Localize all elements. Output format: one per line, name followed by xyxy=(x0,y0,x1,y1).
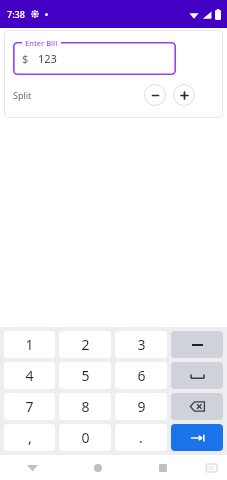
button[interactable]: Space xyxy=(171,362,223,389)
button[interactable]: 7 xyxy=(4,393,55,420)
staticText: Enter Bill xyxy=(25,38,58,48)
button[interactable]: Enter xyxy=(171,424,223,451)
button[interactable]: Back xyxy=(0,455,65,480)
staticText: 7:38 xyxy=(7,8,25,20)
staticText: Split xyxy=(13,89,32,101)
staticText: , xyxy=(28,428,32,447)
staticText: 0 xyxy=(81,428,90,447)
button[interactable]: Decrease split xyxy=(144,84,166,106)
staticText: 4 xyxy=(25,366,34,385)
button[interactable]: 8 xyxy=(59,393,111,420)
staticText: 5 xyxy=(81,366,90,385)
staticText: 123 xyxy=(38,51,57,66)
staticText: 2 xyxy=(81,335,90,354)
button[interactable]: 9 xyxy=(115,393,167,420)
staticText: 7 xyxy=(25,397,34,416)
button[interactable]: . xyxy=(115,424,167,451)
staticText: 8 xyxy=(81,397,90,416)
button[interactable]: 6 xyxy=(115,362,167,389)
button[interactable]: Recent apps xyxy=(130,455,195,480)
button[interactable]: 1 xyxy=(4,331,55,358)
staticText: 1 xyxy=(25,335,34,354)
button[interactable]: Switch keyboard xyxy=(195,455,227,480)
button[interactable]: 2 xyxy=(59,331,111,358)
button[interactable]: , xyxy=(4,424,55,451)
button[interactable]: 3 xyxy=(115,331,167,358)
button[interactable]: Delete xyxy=(171,393,223,420)
button[interactable]: 0 xyxy=(59,424,111,451)
staticText: 9 xyxy=(137,397,146,416)
button[interactable]: Increase split xyxy=(173,84,195,106)
staticText: 6 xyxy=(137,366,146,385)
button[interactable]: Enter Bill xyxy=(13,42,176,75)
button[interactable]: 4 xyxy=(4,362,55,389)
staticText: . xyxy=(139,428,143,447)
staticText: $ xyxy=(22,51,29,66)
button[interactable]: Minus xyxy=(171,331,223,358)
button[interactable]: Home xyxy=(65,455,130,480)
button[interactable]: 5 xyxy=(59,362,111,389)
staticText: 3 xyxy=(137,335,146,354)
